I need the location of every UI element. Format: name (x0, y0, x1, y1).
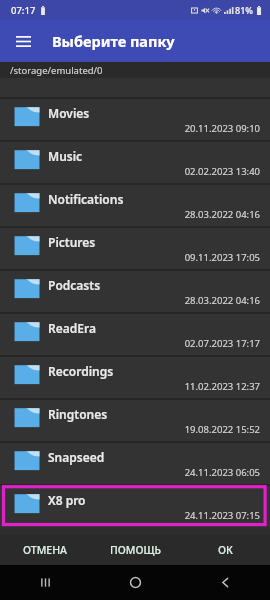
button[interactable]: ОК (180, 535, 270, 565)
staticText: Recordings (48, 363, 114, 379)
staticText: Выберите папку (52, 31, 175, 51)
staticText: 20.11.2023 09:10 (184, 122, 260, 135)
staticText: ОК (218, 543, 233, 557)
staticText: 02.02.2023 13:40 (184, 165, 260, 178)
button[interactable]: Pictures (0, 228, 270, 269)
staticText: Movies (48, 105, 90, 121)
button[interactable]: Music (0, 142, 270, 183)
staticText: 02.07.2023 17:17 (184, 337, 260, 350)
button[interactable]: Movies (0, 99, 270, 140)
button[interactable]: Back (180, 565, 270, 600)
staticText: Podcasts (48, 277, 101, 293)
button[interactable]: ПОМОЩЬ (90, 535, 180, 565)
button[interactable]: Recent apps (0, 565, 90, 600)
button[interactable]: Menu (8, 26, 38, 56)
staticText: ОТМЕНА (23, 543, 67, 557)
staticText: Pictures (48, 234, 96, 250)
staticText: Ringtones (48, 406, 108, 422)
staticText: 28.03.2022 04:16 (184, 208, 260, 221)
button[interactable]: Recordings (0, 357, 270, 398)
staticText: ПОМОЩЬ (110, 543, 161, 557)
staticText: 24.11.2023 06:05 (184, 466, 260, 479)
staticText: Notifications (48, 191, 124, 207)
button[interactable]: ОТМЕНА (0, 535, 90, 565)
staticText: X8 pro (48, 492, 86, 508)
button[interactable]: Snapseed (0, 443, 270, 484)
button[interactable]: Notifications (0, 185, 270, 226)
button[interactable]: Ringtones (0, 400, 270, 441)
button[interactable]: X8 pro (0, 486, 270, 527)
button[interactable]: Podcasts (0, 271, 270, 312)
staticText: 28.03.2022 04:16 (184, 294, 260, 307)
staticText: 07:17 (11, 4, 36, 17)
button[interactable]: Home (90, 565, 180, 600)
staticText: 11.02.2023 12:37 (184, 380, 260, 393)
staticText: /storage/emulated/0 (10, 64, 103, 77)
staticText: ReadEra (48, 320, 96, 336)
staticText: 24.11.2023 07:15 (184, 509, 260, 522)
staticText: 19.08.2022 15:52 (184, 423, 260, 436)
button[interactable]: ReadEra (0, 314, 270, 355)
staticText: Snapseed (48, 449, 105, 465)
staticText: 09.11.2023 17:05 (184, 251, 260, 264)
staticText: Music (48, 148, 83, 164)
staticText: 81% (235, 4, 253, 16)
